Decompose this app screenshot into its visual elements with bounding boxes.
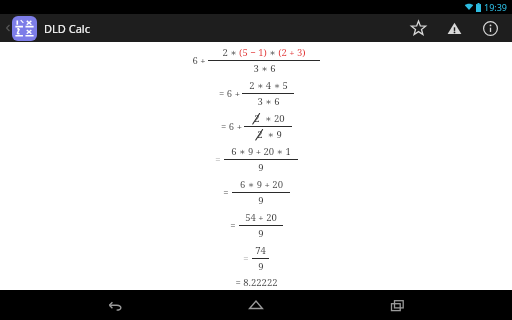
staticText: 9 [258,260,264,273]
button[interactable]: Warning [436,14,472,42]
staticText: 2 ∗ (5 − 1) ∗ (2 + 3) [222,46,306,59]
staticText: 54 + 20 [245,211,277,224]
button[interactable]: Back [89,290,141,320]
staticText: 3 ∗ 6 [253,62,276,75]
staticText: 6 ∗ 9 + 20 [240,178,283,191]
staticText: 9 [258,161,264,174]
staticText: 3 ∗ 6 [257,95,280,108]
button[interactable]: Home [230,290,282,320]
staticText: = [215,153,221,166]
staticText: DLD Calc [44,21,90,36]
staticText: = 8.22222 [235,276,278,289]
staticText: = [243,252,249,265]
staticText: ∗ 20 [262,112,285,125]
staticText: 19:39 [484,1,508,13]
button[interactable]: DLD Calc app icon [12,16,37,41]
staticText: 2 [254,112,260,125]
staticText: ∗ 9 [265,128,282,141]
staticText: = [230,219,236,232]
staticText: 2 [257,128,263,141]
button[interactable]: Info [472,14,508,42]
staticText: = 6 + [219,87,240,100]
staticText: 6 ∗ 9 + 20 ∗ 1 [231,145,291,158]
staticText: 9 [258,227,264,240]
staticText: 74 [255,244,266,257]
button[interactable]: Recent apps [371,290,423,320]
staticText: 6 + [192,54,206,67]
staticText: 9 [258,194,264,207]
staticText: = 6 + [221,120,242,133]
button[interactable]: Favorite [400,14,436,42]
staticText: 2 ∗ 4 ∗ 5 [249,79,288,92]
staticText: = [223,186,229,199]
